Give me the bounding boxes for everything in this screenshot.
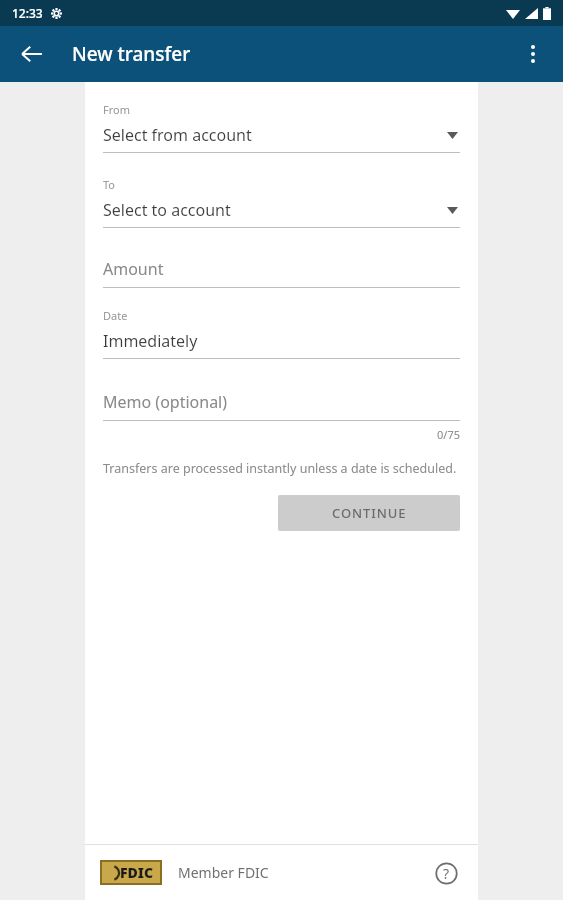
staticText: Immediately [103, 330, 198, 352]
staticText: 0/75 [103, 427, 460, 442]
staticText: To [103, 177, 116, 192]
staticText: CONTINUE [332, 504, 407, 522]
staticText: Memo (optional) [103, 391, 228, 413]
button[interactable]: Date [103, 308, 460, 359]
staticText: Date [103, 308, 128, 323]
button[interactable]: More options [509, 30, 557, 78]
button[interactable]: CONTINUE [278, 495, 460, 531]
button[interactable]: Help [426, 853, 466, 893]
staticText: ? [443, 864, 450, 883]
staticText: Transfers are processed instantly unless… [103, 460, 457, 477]
button[interactable]: Back [8, 30, 56, 78]
staticText: Select to account [103, 199, 231, 221]
staticText: 12:33 [12, 5, 43, 21]
button[interactable]: From [103, 102, 460, 153]
button[interactable]: Amount [103, 258, 460, 288]
staticText: From [103, 102, 130, 117]
staticText: Amount [103, 258, 164, 280]
button[interactable]: Memo (optional) [103, 391, 460, 421]
staticText: Member FDIC [178, 863, 269, 882]
staticText: New transfer [72, 41, 191, 67]
staticText: FDIC [120, 863, 154, 882]
button[interactable]: To [103, 177, 460, 228]
staticText: Select from account [103, 124, 252, 146]
